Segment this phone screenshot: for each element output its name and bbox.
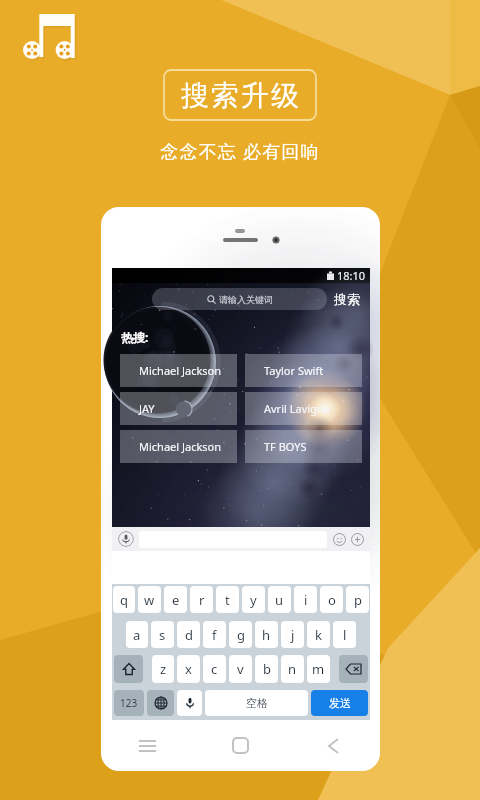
button[interactable]: x <box>177 655 200 683</box>
button[interactable]: g <box>229 621 252 648</box>
button[interactable]: 发送 <box>311 690 368 716</box>
staticText: n <box>288 660 297 678</box>
staticText: 123 <box>120 696 138 710</box>
button[interactable]: Avril Lavigne <box>245 392 362 425</box>
button[interactable]: Key <box>114 655 143 683</box>
button[interactable]: TF BOYS <box>245 430 362 463</box>
staticText: z <box>160 660 167 678</box>
button[interactable]: Back <box>287 720 380 771</box>
staticText: f <box>212 626 217 644</box>
button[interactable]: Menu <box>101 720 194 771</box>
button[interactable]: j <box>281 621 304 648</box>
staticText: JAY <box>139 401 155 416</box>
staticText: d <box>185 626 193 644</box>
button[interactable]: s <box>151 621 174 648</box>
staticText: x <box>185 660 192 678</box>
staticText: g <box>237 626 245 644</box>
staticText: Avril Lavigne <box>264 401 330 416</box>
staticText: 发送 <box>329 696 351 710</box>
staticText: q <box>120 591 128 609</box>
staticText: l <box>343 626 347 644</box>
staticText: s <box>159 626 166 644</box>
button[interactable]: d <box>177 621 200 648</box>
staticText: e <box>172 591 180 609</box>
button[interactable]: l <box>333 621 356 648</box>
staticText: m <box>312 660 325 678</box>
staticText: 请输入关键词 <box>219 294 273 305</box>
staticText: r <box>199 591 205 609</box>
staticText: TF BOYS <box>264 439 307 454</box>
staticText: 念念不忘 必有回响 <box>0 139 480 164</box>
button[interactable]: b <box>255 655 278 683</box>
staticText: i <box>304 591 308 609</box>
button[interactable] <box>177 690 202 716</box>
button[interactable]: Michael Jackson <box>120 430 237 463</box>
button[interactable]: Michael Jackson <box>120 354 237 387</box>
button[interactable]: Taylor Swift <box>245 354 362 387</box>
staticText: Michael Jackson <box>139 363 222 378</box>
staticText: Taylor Swift <box>264 363 324 378</box>
staticText: a <box>133 626 141 644</box>
button[interactable]: h <box>255 621 278 648</box>
button[interactable]: Key <box>339 655 368 683</box>
staticText: p <box>354 591 362 609</box>
button[interactable]: Emoji <box>333 533 346 546</box>
button[interactable]: y <box>242 586 265 613</box>
button[interactable]: JAY <box>120 392 237 425</box>
button[interactable]: t <box>216 586 239 613</box>
staticText: j <box>291 626 295 644</box>
button[interactable]: w <box>138 586 161 613</box>
button[interactable]: c <box>203 655 226 683</box>
staticText: 18:10 <box>337 268 366 283</box>
button[interactable]: o <box>320 586 343 613</box>
button[interactable]: m <box>307 655 330 683</box>
staticText: w <box>144 591 155 609</box>
button[interactable]: Home <box>194 720 287 771</box>
staticText: 热搜: <box>121 329 149 345</box>
button[interactable]: 搜索 <box>333 289 361 309</box>
staticText: y <box>250 591 257 609</box>
staticText: b <box>263 660 271 678</box>
button[interactable]: i <box>294 586 317 613</box>
button[interactable]: e <box>164 586 187 613</box>
staticText: u <box>275 591 284 609</box>
staticText: c <box>211 660 218 678</box>
button[interactable]: u <box>268 586 291 613</box>
button[interactable]: Add <box>351 533 364 546</box>
button[interactable]: r <box>190 586 213 613</box>
staticText: k <box>315 626 322 644</box>
staticText: t <box>225 591 230 609</box>
staticText: Michael Jackson <box>139 439 222 454</box>
button[interactable]: f <box>203 621 226 648</box>
button[interactable]: n <box>281 655 304 683</box>
button[interactable]: k <box>307 621 330 648</box>
staticText: h <box>262 626 271 644</box>
button[interactable]: Voice input <box>118 531 134 547</box>
staticText: o <box>328 591 336 609</box>
staticText: v <box>237 660 244 678</box>
button[interactable]: a <box>126 621 148 648</box>
button[interactable]: Key <box>114 690 144 716</box>
button[interactable]: q <box>113 586 135 613</box>
button[interactable]: 空格 <box>205 690 308 716</box>
button[interactable]: p <box>346 586 369 613</box>
staticText: 搜索 <box>334 291 360 307</box>
button[interactable]: 请输入关键词 <box>152 288 327 310</box>
button[interactable]: z <box>152 655 174 683</box>
staticText: 空格 <box>246 696 268 710</box>
button[interactable]: v <box>229 655 252 683</box>
button[interactable]: Key <box>147 690 174 716</box>
staticText: 搜索升级 <box>180 78 300 113</box>
